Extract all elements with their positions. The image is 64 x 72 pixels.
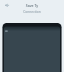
staticText: Save Ty xyxy=(0,3,64,8)
staticText: Connection xyxy=(0,9,64,13)
button[interactable]: Back xyxy=(3,1,10,8)
